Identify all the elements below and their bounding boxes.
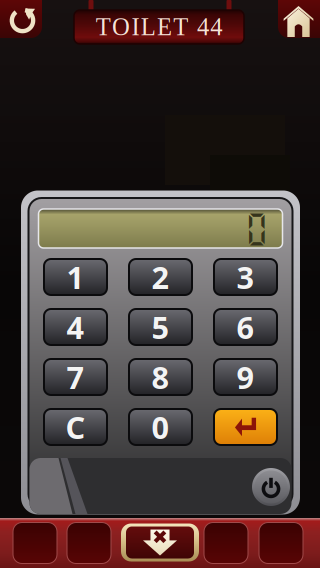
staticText: 5 (151, 307, 169, 347)
button[interactable]: C (44, 409, 107, 445)
staticText: TOILET 44 (96, 13, 222, 41)
button[interactable]: Put away keypad (121, 523, 199, 561)
staticText: 0 (151, 407, 169, 447)
button[interactable]: Power (251, 467, 291, 507)
staticText: 6 (236, 307, 254, 347)
staticText: 2 (151, 257, 169, 297)
staticText: 1 (66, 257, 84, 297)
button[interactable]: 4 (44, 309, 107, 345)
staticText: 3 (236, 257, 254, 297)
button[interactable] (214, 409, 277, 445)
button[interactable]: 7 (44, 359, 107, 395)
staticText: 9 (236, 357, 254, 397)
button[interactable]: 0 (129, 409, 192, 445)
button[interactable]: 9 (214, 359, 277, 395)
button[interactable]: 6 (214, 309, 277, 345)
button[interactable]: 2 (129, 259, 192, 295)
button[interactable]: 8 (129, 359, 192, 395)
staticText: C (65, 407, 85, 447)
button[interactable]: 3 (214, 259, 277, 295)
button[interactable]: 1 (44, 259, 107, 295)
button[interactable]: Home (272, 0, 320, 44)
staticText: 8 (151, 357, 169, 397)
staticText: 0 (244, 209, 269, 248)
staticText: 7 (66, 357, 84, 397)
button[interactable]: 5 (129, 309, 192, 345)
staticText: 4 (66, 307, 84, 347)
button[interactable]: Restart (0, 0, 48, 44)
